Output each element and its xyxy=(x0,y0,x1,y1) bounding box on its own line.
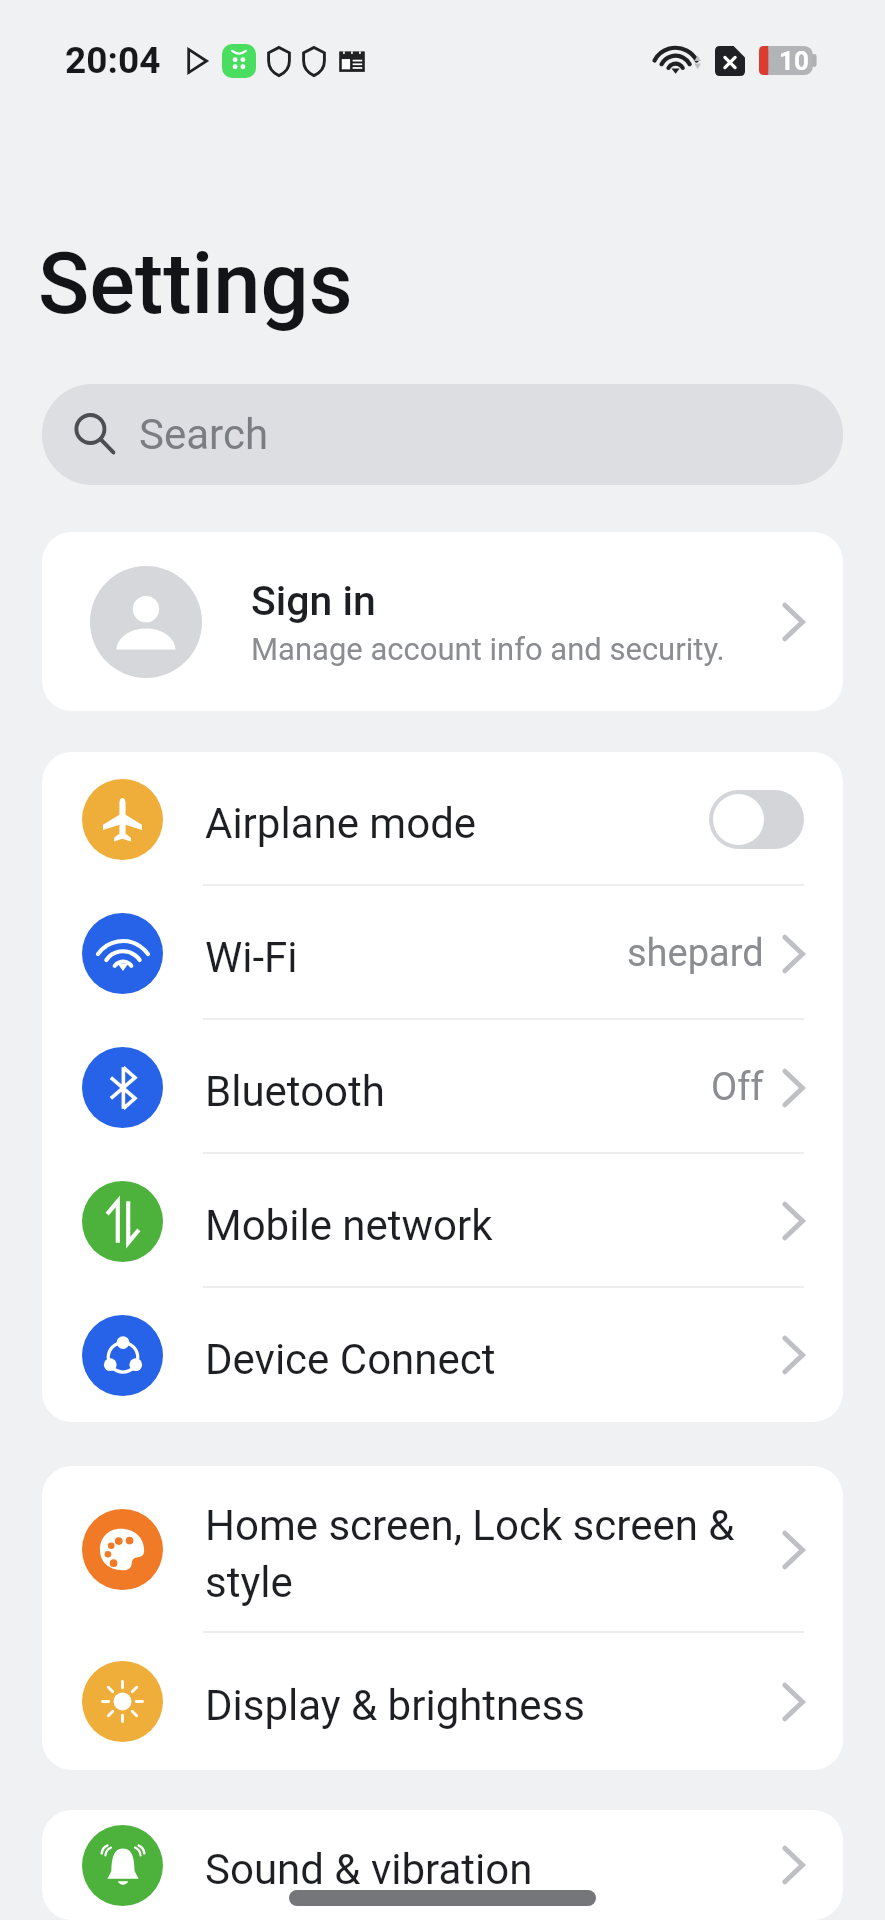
staticText: 20:04 xyxy=(65,39,161,82)
button[interactable]: Display & brightness xyxy=(42,1633,843,1770)
staticText: Manage account info and security. xyxy=(251,631,725,667)
button[interactable]: Airplane mode toggle xyxy=(709,790,804,849)
staticText: Airplane mode xyxy=(205,799,693,848)
button[interactable]: Sound & vibration xyxy=(42,1810,843,1920)
staticText: Device Connect xyxy=(205,1335,766,1384)
staticText: Sound & vibration xyxy=(205,1845,766,1894)
button[interactable]: Home screen, Lock screen & style xyxy=(42,1466,843,1633)
button[interactable]: Airplane mode xyxy=(42,752,843,886)
staticText: Wi-Fi xyxy=(205,933,611,982)
staticText: Bluetooth xyxy=(205,1067,695,1116)
staticText: 10 xyxy=(779,46,809,75)
staticText: Search xyxy=(139,410,269,459)
button[interactable]: Sign in xyxy=(42,532,843,711)
button[interactable]: Wi-Fi xyxy=(42,886,843,1020)
button[interactable]: Mobile network xyxy=(42,1154,843,1288)
button[interactable]: Search xyxy=(42,384,843,485)
staticText: shepard xyxy=(627,931,764,976)
staticText: Off xyxy=(711,1065,764,1110)
button[interactable]: Bluetooth xyxy=(42,1020,843,1154)
staticText: Display & brightness xyxy=(205,1681,766,1730)
staticText: Settings xyxy=(38,234,353,334)
staticText: Home screen, Lock screen & style xyxy=(205,1501,766,1607)
staticText: Sign in xyxy=(251,577,376,625)
staticText: Mobile network xyxy=(205,1201,766,1250)
button[interactable]: Device Connect xyxy=(42,1288,843,1422)
